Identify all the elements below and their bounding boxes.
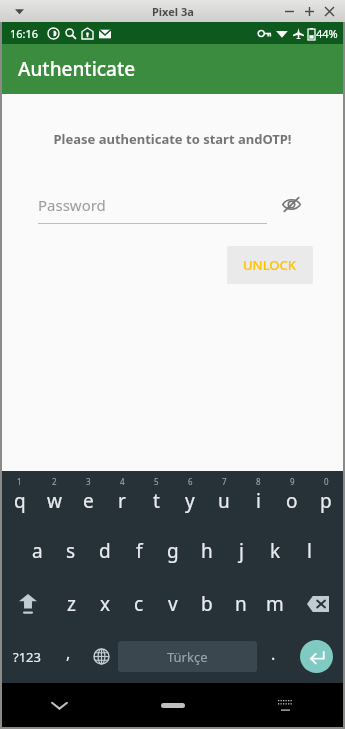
button[interactable]: ?123 — [2, 630, 52, 683]
button[interactable]: 4 — [105, 471, 139, 524]
staticText: 44% — [316, 26, 338, 41]
button[interactable]: l — [292, 524, 326, 577]
staticText: v — [168, 591, 178, 617]
staticText: Authenticate — [18, 56, 136, 82]
staticText: 3 — [86, 476, 91, 487]
staticText: 2 — [52, 476, 57, 487]
button[interactable]: Back — [2, 683, 117, 727]
button[interactable]: Shift — [2, 577, 54, 630]
staticText: d — [99, 538, 111, 564]
staticText: Türkçe — [167, 648, 208, 666]
button[interactable]: Switch keyboard — [228, 683, 343, 727]
button[interactable]: 5 — [139, 471, 173, 524]
button[interactable]: , — [52, 630, 85, 683]
staticText: t — [153, 488, 160, 514]
button[interactable]: Password — [38, 193, 307, 225]
staticText: o — [286, 488, 298, 514]
staticText: f — [136, 538, 143, 564]
button[interactable]: 7 — [207, 471, 241, 524]
staticText: j — [239, 538, 244, 564]
button[interactable]: z — [54, 577, 88, 630]
button[interactable]: k — [258, 524, 292, 577]
staticText: a — [32, 538, 43, 564]
button[interactable]: Enter — [290, 630, 343, 683]
button[interactable]: a — [20, 524, 54, 577]
button[interactable]: d — [88, 524, 122, 577]
staticText: b — [201, 591, 213, 617]
button[interactable]: 9 — [275, 471, 309, 524]
button[interactable]: Menu — [10, 2, 28, 20]
staticText: p — [320, 488, 332, 514]
button[interactable]: j — [224, 524, 258, 577]
staticText: ?123 — [13, 648, 41, 666]
staticText: c — [134, 591, 144, 617]
staticText: , — [66, 642, 71, 664]
staticText: 5 — [154, 476, 159, 487]
button[interactable]: Maximize — [299, 1, 319, 21]
staticText: n — [235, 591, 247, 617]
button[interactable]: Change language — [85, 630, 118, 683]
button[interactable]: h — [190, 524, 224, 577]
staticText: e — [83, 488, 94, 514]
staticText: 7 — [222, 476, 227, 487]
button[interactable]: 6 — [173, 471, 207, 524]
staticText: z — [67, 591, 76, 617]
button[interactable]: 1 — [2, 471, 37, 524]
button[interactable]: 2 — [37, 471, 71, 524]
button[interactable]: 3 — [71, 471, 105, 524]
staticText: k — [270, 538, 281, 564]
staticText: r — [118, 488, 126, 514]
button[interactable]: Toggle password visibility — [275, 193, 307, 216]
staticText: UNLOCK — [243, 256, 297, 274]
staticText: Password — [38, 195, 106, 215]
staticText: 16:16 — [10, 26, 39, 41]
button[interactable]: g — [156, 524, 190, 577]
button[interactable]: 0 — [309, 471, 343, 524]
staticText: x — [100, 591, 111, 617]
staticText: . — [271, 643, 276, 665]
staticText: Pixel 3a — [152, 4, 194, 19]
staticText: u — [218, 488, 230, 514]
button[interactable]: 8 — [241, 471, 275, 524]
button[interactable]: m — [258, 577, 292, 630]
button[interactable]: . — [257, 630, 290, 683]
staticText: w — [47, 488, 62, 514]
staticText: m — [266, 591, 284, 617]
staticText: i — [256, 488, 261, 514]
button[interactable]: Backspace — [292, 577, 343, 630]
staticText: y — [185, 488, 195, 514]
button[interactable]: f — [122, 524, 156, 577]
staticText: 0 — [324, 476, 329, 487]
button[interactable]: Minimize — [279, 1, 299, 21]
staticText: l — [307, 538, 312, 564]
staticText: 1 — [17, 476, 22, 487]
staticText: 4 — [120, 476, 125, 487]
button[interactable]: c — [122, 577, 156, 630]
button[interactable]: n — [224, 577, 258, 630]
button[interactable]: Space — [118, 641, 257, 672]
button[interactable]: Close — [319, 1, 339, 21]
staticText: 6 — [188, 476, 193, 487]
staticText: h — [201, 538, 213, 564]
button[interactable]: Home — [118, 683, 228, 727]
button[interactable]: v — [156, 577, 190, 630]
button[interactable]: s — [54, 524, 88, 577]
staticText: 9 — [290, 476, 295, 487]
button[interactable]: UNLOCK — [227, 246, 313, 284]
staticText: s — [66, 538, 76, 564]
staticText: 8 — [256, 476, 261, 487]
button[interactable]: x — [88, 577, 122, 630]
staticText: Please authenticate to start andOTP! — [18, 130, 327, 148]
button[interactable]: b — [190, 577, 224, 630]
staticText: q — [14, 488, 26, 514]
staticText: g — [167, 538, 179, 564]
